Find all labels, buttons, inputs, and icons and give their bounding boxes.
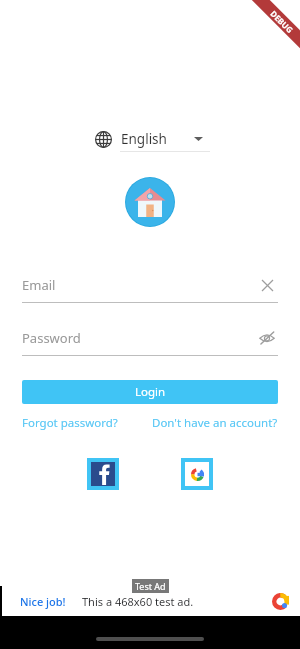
staticText: This a 468x60 test ad. — [82, 594, 194, 609]
staticText: Nice job! — [20, 594, 66, 609]
staticText: Password — [22, 329, 81, 347]
button[interactable]: Show password — [256, 327, 278, 349]
button[interactable]: English — [93, 128, 208, 150]
staticText: Login — [135, 384, 166, 400]
staticText: Email — [22, 276, 56, 294]
staticText: Test Ad — [135, 580, 166, 592]
button[interactable]: Nice job! — [0, 586, 300, 616]
button[interactable]: Email — [22, 273, 278, 297]
button[interactable]: Forgot password? — [22, 415, 118, 431]
button[interactable]: Password — [22, 326, 278, 350]
staticText: Don't have an account? — [152, 415, 278, 431]
button[interactable]: Sign in with Google — [181, 458, 213, 490]
button[interactable]: Clear email — [256, 274, 278, 296]
button[interactable]: Sign in with Facebook — [87, 458, 119, 490]
staticText: Forgot password? — [22, 415, 118, 431]
staticText: English — [121, 130, 167, 148]
staticText: DEBUG — [268, 8, 296, 35]
button[interactable]: Login — [22, 380, 278, 404]
button[interactable]: Don't have an account? — [152, 415, 278, 431]
